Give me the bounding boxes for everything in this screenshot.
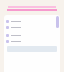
button[interactable]: [6, 32, 58, 38]
button[interactable]: [6, 18, 58, 24]
button[interactable]: [6, 24, 58, 30]
button[interactable]: [6, 38, 58, 44]
